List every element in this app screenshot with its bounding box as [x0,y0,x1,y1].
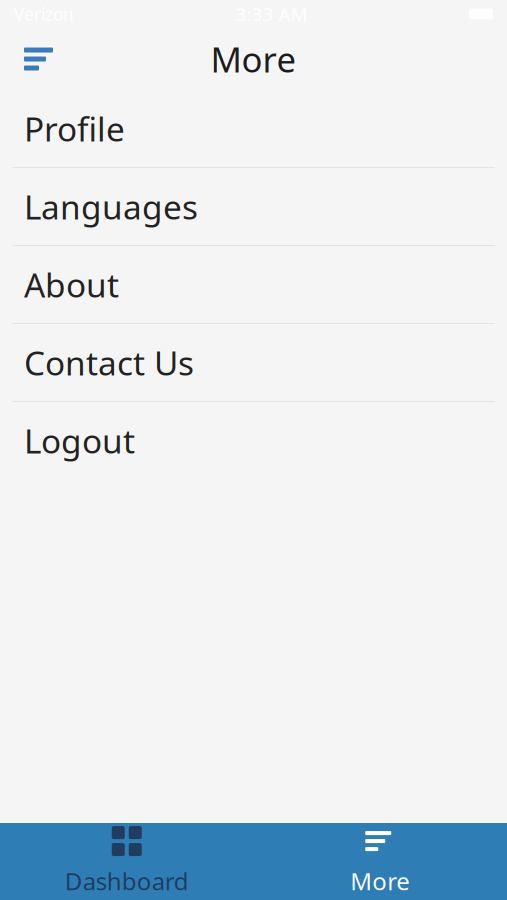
button[interactable]: Languages [0,168,507,246]
staticText: More [210,36,296,82]
staticText: Profile [24,106,125,151]
button[interactable]: About [0,246,507,324]
button[interactable]: Profile [0,90,507,168]
button[interactable]: Dashboard [0,823,253,900]
staticText: More [350,865,410,897]
staticText: About [24,262,119,307]
button[interactable]: More [253,823,507,900]
staticText: Languages [24,184,198,229]
staticText: Logout [24,418,135,463]
button[interactable]: Menu [24,35,72,83]
staticText: Contact Us [24,340,194,385]
button[interactable]: Contact Us [0,324,507,402]
button[interactable]: Logout [0,402,507,480]
staticText: Dashboard [65,865,189,897]
